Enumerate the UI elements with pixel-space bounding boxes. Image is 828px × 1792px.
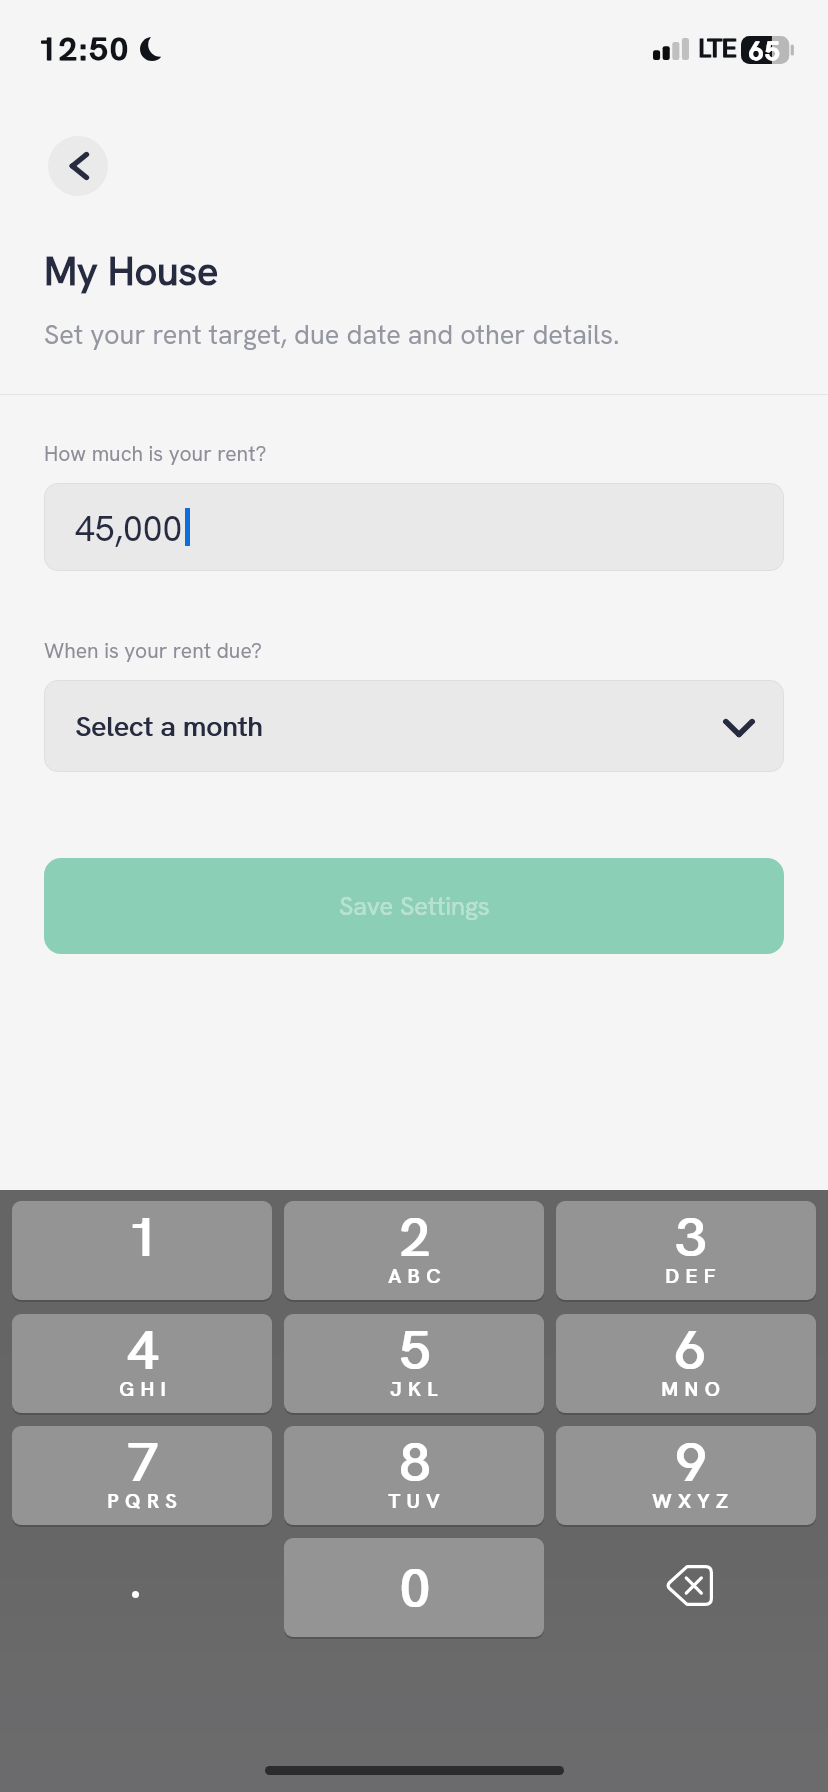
- staticText: 6: [675, 1315, 706, 1385]
- staticText: 9: [677, 1427, 708, 1497]
- button[interactable]: Delete: [556, 1538, 816, 1637]
- staticText: TUV: [389, 1488, 447, 1514]
- button[interactable]: 4: [12, 1314, 272, 1413]
- staticText: 9: [675, 1427, 706, 1497]
- staticText: 0: [399, 1553, 430, 1623]
- staticText: 5: [401, 1315, 432, 1385]
- staticText: GHI: [120, 1376, 173, 1402]
- staticText: 6: [677, 1315, 708, 1385]
- staticText: 2: [399, 1202, 430, 1272]
- button[interactable]: 6: [556, 1314, 816, 1413]
- button[interactable]: 3: [556, 1201, 816, 1300]
- staticText: LTE: [698, 32, 736, 65]
- staticText: Set your rent target, due date and other…: [44, 317, 620, 352]
- staticText: Save Settings: [339, 890, 490, 923]
- button[interactable]: 9: [556, 1426, 816, 1525]
- staticText: 2: [401, 1202, 432, 1272]
- staticText: PQRS: [108, 1488, 184, 1514]
- staticText: JKL: [391, 1376, 445, 1402]
- staticText: GHI: [119, 1376, 172, 1402]
- button[interactable]: 45,000: [44, 483, 784, 571]
- button[interactable]: 0: [284, 1538, 544, 1637]
- staticText: DEF: [666, 1263, 723, 1289]
- staticText: 8: [399, 1427, 430, 1497]
- button[interactable]: Save Settings: [44, 858, 784, 954]
- staticText: 8: [401, 1427, 432, 1497]
- staticText: 0: [401, 1553, 432, 1623]
- button[interactable]: Decimal point: [12, 1538, 272, 1637]
- staticText: 65: [750, 35, 782, 68]
- button[interactable]: Back: [48, 136, 108, 196]
- staticText: DEF: [665, 1263, 722, 1289]
- staticText: MNO: [661, 1376, 726, 1402]
- staticText: 4: [129, 1315, 160, 1385]
- staticText: My House: [44, 245, 219, 297]
- staticText: When is your rent due?: [44, 637, 262, 664]
- staticText: 4: [127, 1315, 158, 1385]
- staticText: Select a month: [75, 708, 263, 745]
- staticText: 1: [129, 1202, 160, 1272]
- staticText: 5: [399, 1315, 430, 1385]
- staticText: 1: [127, 1202, 158, 1272]
- staticText: 7: [129, 1427, 160, 1497]
- staticText: JKL: [390, 1376, 444, 1402]
- staticText: ABC: [388, 1263, 447, 1289]
- button[interactable]: 2: [284, 1201, 544, 1300]
- staticText: 12:50: [38, 28, 130, 70]
- button[interactable]: Select a month: [44, 680, 784, 772]
- button[interactable]: 1: [12, 1201, 272, 1300]
- staticText: 3: [677, 1202, 708, 1272]
- staticText: Save Settings: [339, 890, 490, 923]
- button[interactable]: 8: [284, 1426, 544, 1525]
- staticText: TUV: [388, 1488, 446, 1514]
- button[interactable]: 5: [284, 1314, 544, 1413]
- staticText: 12:50: [39, 28, 131, 70]
- staticText: Select a month: [76, 708, 264, 745]
- staticText: 65: [749, 35, 781, 68]
- staticText: MNO: [662, 1376, 727, 1402]
- staticText: ABC: [389, 1263, 448, 1289]
- staticText: 7: [127, 1427, 158, 1497]
- staticText: LTE: [699, 32, 737, 65]
- staticText: 45,000: [75, 506, 183, 552]
- staticText: WXYZ: [653, 1488, 735, 1514]
- button[interactable]: 7: [12, 1426, 272, 1525]
- staticText: 3: [675, 1202, 706, 1272]
- staticText: WXYZ: [652, 1488, 734, 1514]
- staticText: PQRS: [107, 1488, 183, 1514]
- staticText: How much is your rent?: [44, 440, 267, 467]
